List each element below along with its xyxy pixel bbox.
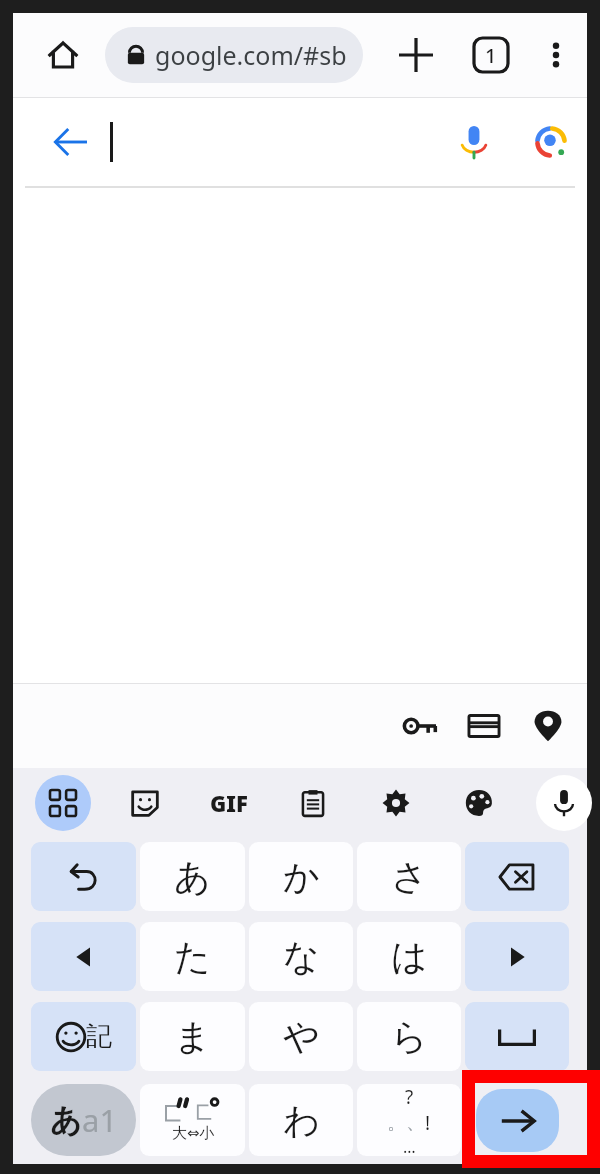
button[interactable]: Clipboard	[287, 777, 339, 829]
button[interactable]: GIF	[201, 775, 257, 831]
staticText: ら	[391, 1014, 428, 1059]
button[interactable]: な	[249, 922, 353, 991]
staticText: あ	[174, 854, 211, 899]
staticText: は	[391, 934, 428, 979]
staticText: …	[403, 1136, 416, 1156]
button[interactable]	[465, 922, 569, 991]
button[interactable]: Themes	[453, 777, 505, 829]
staticText: た	[174, 934, 211, 979]
button[interactable]: More options	[526, 25, 586, 85]
staticText: わ	[283, 1098, 320, 1143]
button[interactable]: Punctuation	[357, 1084, 461, 1156]
button[interactable]: 記	[31, 1002, 136, 1071]
staticText: ?	[405, 1084, 414, 1110]
button[interactable]: ら	[357, 1002, 461, 1071]
button[interactable]: Voice search	[443, 111, 505, 173]
staticText: か	[283, 854, 320, 899]
button[interactable]: や	[249, 1002, 353, 1071]
button[interactable]: Home	[31, 23, 95, 87]
staticText: a1	[82, 1099, 118, 1141]
staticText: GIF	[210, 788, 248, 818]
button[interactable]: ま	[140, 1002, 245, 1071]
button[interactable]: Enter	[476, 1089, 559, 1152]
button[interactable]: google.com/#sb	[105, 27, 363, 83]
button[interactable]: Stickers	[119, 777, 171, 829]
button[interactable]: Addresses	[517, 695, 579, 757]
button[interactable]: Settings	[370, 777, 422, 829]
button[interactable]: Back	[39, 110, 103, 174]
button[interactable]: Passwords	[389, 695, 451, 757]
staticText: 大⇔小	[172, 1124, 215, 1143]
button[interactable]: Dakuten and small kana	[140, 1084, 245, 1156]
button[interactable]: Keyboard modes	[35, 775, 91, 831]
button[interactable]: か	[249, 842, 353, 911]
button[interactable]: あ	[140, 842, 245, 911]
staticText: さ	[391, 854, 428, 899]
staticText: 。	[387, 1111, 406, 1135]
button[interactable]: New tab	[384, 23, 448, 87]
button[interactable]	[465, 842, 569, 911]
staticText: 、	[406, 1111, 425, 1135]
button[interactable]: わ	[249, 1084, 353, 1156]
button[interactable]	[31, 922, 136, 991]
button[interactable]: Tabs	[459, 23, 523, 87]
button[interactable]	[465, 1002, 569, 1071]
staticText: 1	[485, 42, 497, 69]
staticText: や	[283, 1014, 320, 1059]
staticText: な	[283, 934, 320, 979]
button[interactable]	[31, 842, 136, 911]
button[interactable]: さ	[357, 842, 461, 911]
staticText: google.com/#sb	[155, 38, 347, 72]
staticText: 記	[86, 1020, 112, 1053]
button[interactable]: Voice input	[536, 775, 592, 831]
button[interactable]: は	[357, 922, 461, 991]
staticText: あ	[50, 1101, 82, 1140]
staticText: ま	[174, 1014, 211, 1059]
button[interactable]: Google Lens	[520, 111, 582, 173]
button[interactable]: Payment methods	[453, 695, 515, 757]
button[interactable]: た	[140, 922, 245, 991]
button[interactable]: あ	[31, 1084, 136, 1156]
staticText: !	[425, 1110, 431, 1136]
